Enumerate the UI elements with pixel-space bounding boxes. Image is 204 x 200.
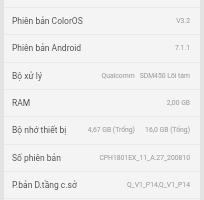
button[interactable]: Bộ nhớ thiết bị <box>4 116 200 143</box>
staticText: RAM <box>12 98 31 108</box>
staticText: 2,00 GB <box>166 99 190 107</box>
button[interactable]: P.bản D.tầng c.sở <box>4 171 200 198</box>
staticText: Bộ xử lý <box>12 71 42 81</box>
staticText: 4,67 GB (Trống) 16,0 GB (Tổng) <box>87 126 190 134</box>
button[interactable]: Phiên bản ColorOS <box>4 7 200 34</box>
staticText: Bộ nhớ thiết bị <box>12 125 67 135</box>
button[interactable]: Số phiên bản <box>4 144 200 171</box>
staticText: Phiên bản Android <box>12 43 82 53</box>
staticText: Phiên bản ColorOS <box>12 16 83 26</box>
staticText: Qualcomm SDM450 Lõi tám <box>101 72 190 80</box>
staticText: CPH1801EX_11_A.27_200810 <box>99 154 190 162</box>
staticText: V3.2 <box>176 17 190 25</box>
button[interactable]: Phiên bản Android <box>4 34 200 61</box>
staticText: Q_V1_P14,Q_V1_P14 <box>126 181 190 189</box>
staticText: P.bản D.tầng c.sở <box>12 180 77 190</box>
staticText: Số phiên bản <box>12 153 61 163</box>
staticText: 7.1.1 <box>174 44 190 52</box>
button[interactable]: RAM <box>4 89 200 116</box>
button[interactable]: Bộ xử lý <box>4 62 200 89</box>
